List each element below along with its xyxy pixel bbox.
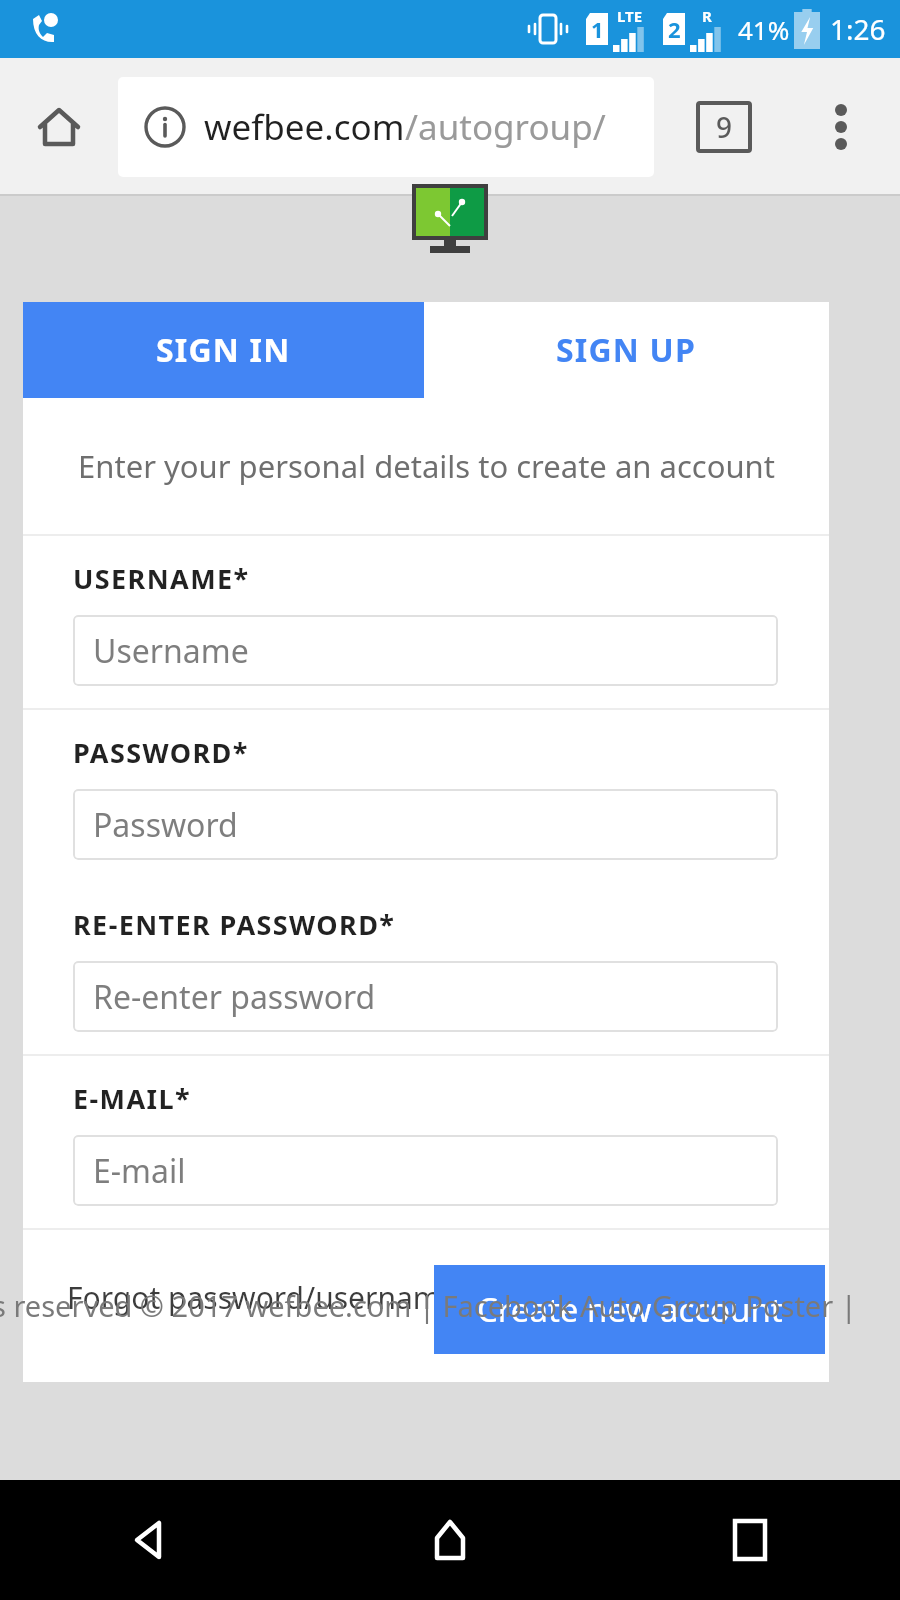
staticText: Password xyxy=(93,803,238,847)
staticText: PASSWORD* xyxy=(73,734,249,771)
staticText: Create new account xyxy=(477,1287,783,1332)
button[interactable]: wefbee.com xyxy=(118,77,654,177)
button[interactable]: Password xyxy=(73,789,778,860)
button[interactable]: Recent apps xyxy=(690,1480,810,1600)
staticText: Username xyxy=(93,629,249,673)
button[interactable]: SIGN UP xyxy=(424,302,829,398)
staticText: RE-ENTER PASSWORD* xyxy=(73,906,396,943)
button[interactable]: Tabs xyxy=(678,81,770,173)
staticText: 2 xyxy=(668,14,681,44)
button[interactable]: Re-enter password xyxy=(73,961,778,1032)
button[interactable]: Create new account xyxy=(434,1265,825,1354)
staticText: SIGN IN xyxy=(156,328,291,372)
staticText: E-MAIL* xyxy=(73,1080,191,1117)
staticText: s reserved © 2017 wefbee.com | Facebook … xyxy=(0,1286,892,1325)
staticText: USERNAME* xyxy=(73,560,250,597)
staticText: /autogroup/ xyxy=(405,103,606,151)
staticText: Re-enter password xyxy=(93,975,376,1019)
button[interactable]: Username xyxy=(73,615,778,686)
staticText: SIGN UP xyxy=(556,328,697,372)
staticText: wefbee.com xyxy=(204,103,405,151)
button[interactable]: Back xyxy=(90,1480,210,1600)
button[interactable]: E-mail xyxy=(73,1135,778,1206)
button[interactable]: Forgot password/username? xyxy=(67,1277,471,1318)
button[interactable]: Home xyxy=(22,90,96,164)
staticText: LTE xyxy=(617,6,643,26)
staticText: 1 xyxy=(591,14,604,44)
staticText: Enter your personal details to create an… xyxy=(78,445,775,487)
button[interactable]: More options xyxy=(802,88,880,166)
staticText: 1:26 xyxy=(830,10,886,48)
staticText: R xyxy=(702,6,712,26)
button[interactable]: Home xyxy=(390,1480,510,1600)
staticText: 41% xyxy=(738,12,790,47)
button[interactable]: SIGN IN xyxy=(23,302,424,398)
staticText: E-mail xyxy=(93,1149,186,1193)
staticText: 9 xyxy=(716,108,733,146)
